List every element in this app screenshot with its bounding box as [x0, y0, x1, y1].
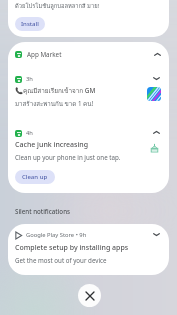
button[interactable]: ด้วยโปรโมชันลูกบอลหลากสี มาย!	[8, 0, 169, 37]
button[interactable]: Clear all notifications	[78, 284, 101, 307]
button[interactable]: Collapse	[149, 125, 163, 139]
staticText: 📞คุณมีสายเรียกเข้าจาก GM	[15, 86, 96, 96]
staticText: Get the most out of your device	[15, 256, 107, 264]
staticText: Silent notifications	[15, 207, 71, 215]
button[interactable]: Install	[15, 17, 45, 31]
button[interactable]: 4h	[8, 125, 169, 193]
staticText: 4h	[26, 129, 33, 137]
button[interactable]: Clean up	[15, 170, 55, 184]
staticText: Complete setup by installing apps	[15, 243, 129, 253]
staticText: Google Play Store • 9h	[26, 231, 87, 239]
button[interactable]: Expand	[149, 71, 163, 85]
staticText: Cache junk increasing	[15, 140, 89, 150]
staticText: Clean up your phone in just one tap.	[15, 153, 121, 161]
staticText: มาสร้างสะพานกัน ขาด 1 คน!	[15, 99, 94, 109]
staticText: Clean up	[22, 173, 48, 181]
button[interactable]: 3h	[8, 71, 169, 116]
staticText: 3h	[26, 75, 33, 83]
button[interactable]: App Market	[8, 46, 169, 62]
button[interactable]: Collapse	[150, 47, 164, 61]
staticText: Install	[21, 20, 39, 28]
staticText: ด้วยโปรโมชันลูกบอลหลากสี มาย!	[15, 1, 100, 10]
button[interactable]: Google Play Store • 9h	[8, 224, 169, 275]
button[interactable]: Expand	[149, 227, 163, 241]
staticText: App Market	[27, 50, 62, 59]
